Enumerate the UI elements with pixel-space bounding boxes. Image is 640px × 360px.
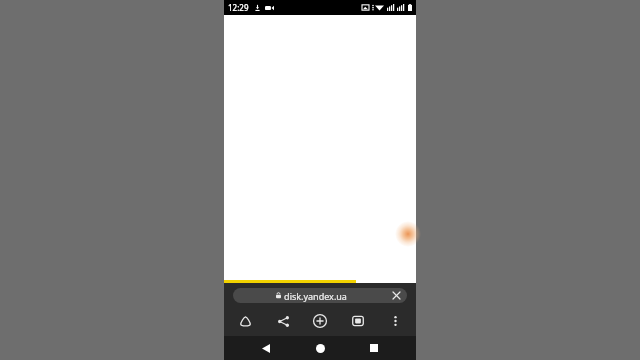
button[interactable]: Home [308, 336, 332, 360]
button[interactable]: Tabs [347, 310, 369, 332]
button[interactable]: Yandex home [234, 310, 256, 332]
staticText: disk.yandex.ua [284, 290, 347, 302]
button[interactable]: New tab [309, 310, 331, 332]
button[interactable]: More options [384, 310, 406, 332]
staticText: 12:29 [228, 2, 249, 13]
button[interactable]: disk.yandex.ua [233, 288, 407, 303]
button[interactable]: Share [272, 310, 294, 332]
button[interactable]: Stop loading [391, 290, 402, 301]
button[interactable]: Recents [362, 336, 386, 360]
button[interactable]: Back [254, 336, 278, 360]
